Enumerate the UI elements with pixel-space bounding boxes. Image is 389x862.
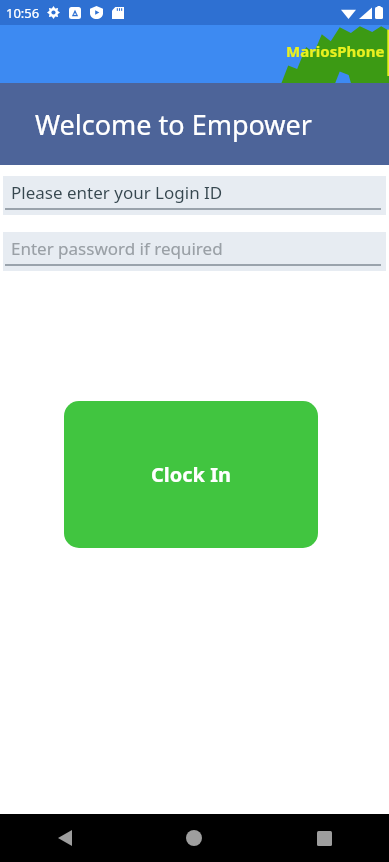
button[interactable]: Please enter your Login ID: [3, 176, 386, 215]
button[interactable]: Home: [129, 814, 259, 862]
staticText: Enter password if required: [11, 237, 223, 260]
button[interactable]: Back: [0, 814, 129, 862]
staticText: Welcome to Empower: [35, 106, 312, 143]
button[interactable]: Recent apps: [259, 814, 389, 862]
button[interactable]: Clock In: [64, 401, 318, 548]
button[interactable]: Enter password if required: [3, 232, 386, 271]
staticText: 10:56: [6, 4, 40, 22]
staticText: Please enter your Login ID: [11, 181, 223, 204]
staticText: MariosPhone: [286, 41, 385, 61]
staticText: Clock In: [151, 461, 231, 488]
